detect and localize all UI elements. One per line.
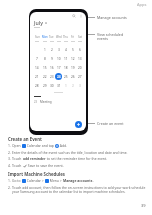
staticText: 1. [8,143,12,148]
staticText: 2 [51,48,53,52]
staticText: Tue [49,35,54,39]
staticText: Create an event [97,121,124,126]
staticText: 22 [43,75,47,79]
staticText: 17 [57,66,61,70]
staticText: 19 [71,66,75,70]
staticText: 20 [78,66,82,70]
staticText: 27 [78,75,82,79]
staticText: 2 [72,84,74,88]
staticText: 30 [50,84,54,88]
staticText: Thu [63,35,68,39]
staticText: 12 [71,57,75,61]
staticText: 4. [8,163,12,168]
staticText: Apps [137,2,147,7]
staticText: 2. [8,150,12,155]
staticText: Save to save the event. [27,163,64,168]
staticText: 8 [44,57,46,61]
staticText: Open [12,143,22,148]
staticText: 18 [64,66,68,70]
staticText: Calendar and tap [26,143,55,148]
staticText: 1 [65,84,67,88]
staticText: 31 [57,84,61,88]
staticText: 14 [35,66,39,70]
staticText: 2. [8,185,12,190]
staticText: View scheduled events [97,32,124,42]
staticText: 3 [79,84,81,88]
staticText: your Samsung account to the calendar lis… [12,189,126,194]
staticText: 26 [71,75,75,79]
staticText: 28 [35,84,39,88]
staticText: Touch [12,163,23,168]
staticText: Menu > [49,178,63,183]
staticText: Sat [78,35,82,39]
staticText: 21 [35,75,39,79]
staticText: 39 [141,203,146,208]
staticText: 9 [51,57,53,61]
staticText: 3. [8,156,12,161]
staticText: Sun [35,35,40,39]
staticText: 15 [43,66,47,70]
staticText: Calendar > [26,178,45,183]
staticText: . [93,178,94,183]
staticText: 29 [43,84,47,88]
staticText: 3 [58,48,60,52]
staticText: Touch add account, then follow the on-sc… [12,185,146,190]
staticText: Wed [56,35,62,39]
staticText: 7 [36,57,38,61]
staticText: 1. [8,178,12,183]
staticText: 6 [79,48,81,52]
staticText: Mon [42,35,48,39]
button[interactable]: More options [79,14,83,18]
staticText: Create an Event [8,136,42,142]
staticText: Enter the details of the event such as t… [12,150,128,155]
staticText: 13 [78,57,82,61]
staticText: Touch [12,156,23,161]
staticText: to set the reminder time for the event. [46,156,107,161]
staticText: Manage accounts [63,178,93,183]
staticText: Go to [12,178,22,183]
staticText: 25 [64,75,68,79]
staticText: Add. [59,143,68,148]
staticText: Manage accounts [97,15,127,20]
staticText: 10 [57,57,61,61]
staticText: 23 [34,100,37,104]
button[interactable]: Create an event [75,121,82,128]
staticText: 1 [44,48,46,52]
staticText: July [34,19,43,26]
staticText: 16 [50,66,54,70]
staticText: Meeting [40,100,52,104]
button[interactable]: Search [72,14,76,18]
staticText: 11 [64,57,68,61]
staticText: 24 [57,75,61,79]
staticText: add reminder [23,156,46,161]
staticText: Fri [71,35,75,39]
staticText: 5 [72,48,74,52]
staticText: Import Machine Schedules [8,171,66,177]
staticText: 23 [50,75,54,79]
staticText: 4 [65,48,67,52]
